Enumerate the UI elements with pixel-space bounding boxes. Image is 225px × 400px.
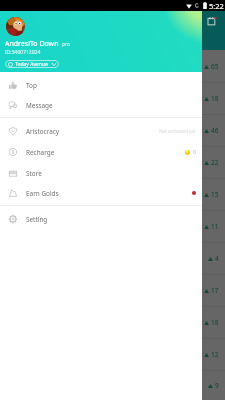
- staticText: Recharge: [26, 148, 55, 157]
- staticText: Not activated yet: [159, 128, 196, 134]
- staticText: 18: [211, 318, 219, 327]
- staticText: 0: [193, 149, 196, 156]
- button[interactable]: Store: [0, 163, 202, 183]
- staticText: 15: [211, 190, 219, 199]
- staticText: Top: [26, 81, 37, 90]
- staticText: 5:22: [209, 1, 224, 11]
- button[interactable]: Aristocracy: [0, 121, 202, 141]
- button[interactable]: Message: [0, 95, 202, 115]
- staticText: 22: [211, 158, 219, 167]
- staticText: 17: [211, 286, 219, 295]
- staticText: pro: [62, 41, 71, 48]
- staticText: Today Avenue: [15, 61, 48, 68]
- staticText: 9: [215, 381, 219, 390]
- button[interactable]: Recharge: [0, 142, 202, 162]
- button[interactable]: Today Avenue: [5, 60, 59, 68]
- staticText: AndresiTo Down: [5, 39, 59, 49]
- staticText: Store: [26, 169, 42, 178]
- staticText: 46: [211, 126, 219, 135]
- staticText: 18: [211, 94, 219, 103]
- staticText: 12: [211, 350, 219, 359]
- button[interactable]: Earn Golds: [0, 183, 202, 203]
- staticText: 11: [211, 222, 219, 231]
- staticText: 65: [211, 62, 219, 71]
- staticText: Earn Golds: [26, 189, 59, 198]
- button[interactable]: Events: [208, 17, 216, 25]
- staticText: Setting: [26, 215, 48, 224]
- button[interactable]: Top: [0, 75, 202, 95]
- button[interactable]: Setting: [0, 209, 202, 229]
- staticText: Aristocracy: [26, 127, 60, 136]
- staticText: ID:5400712024: [5, 49, 41, 56]
- staticText: 4: [215, 254, 219, 263]
- staticText: Message: [26, 101, 53, 110]
